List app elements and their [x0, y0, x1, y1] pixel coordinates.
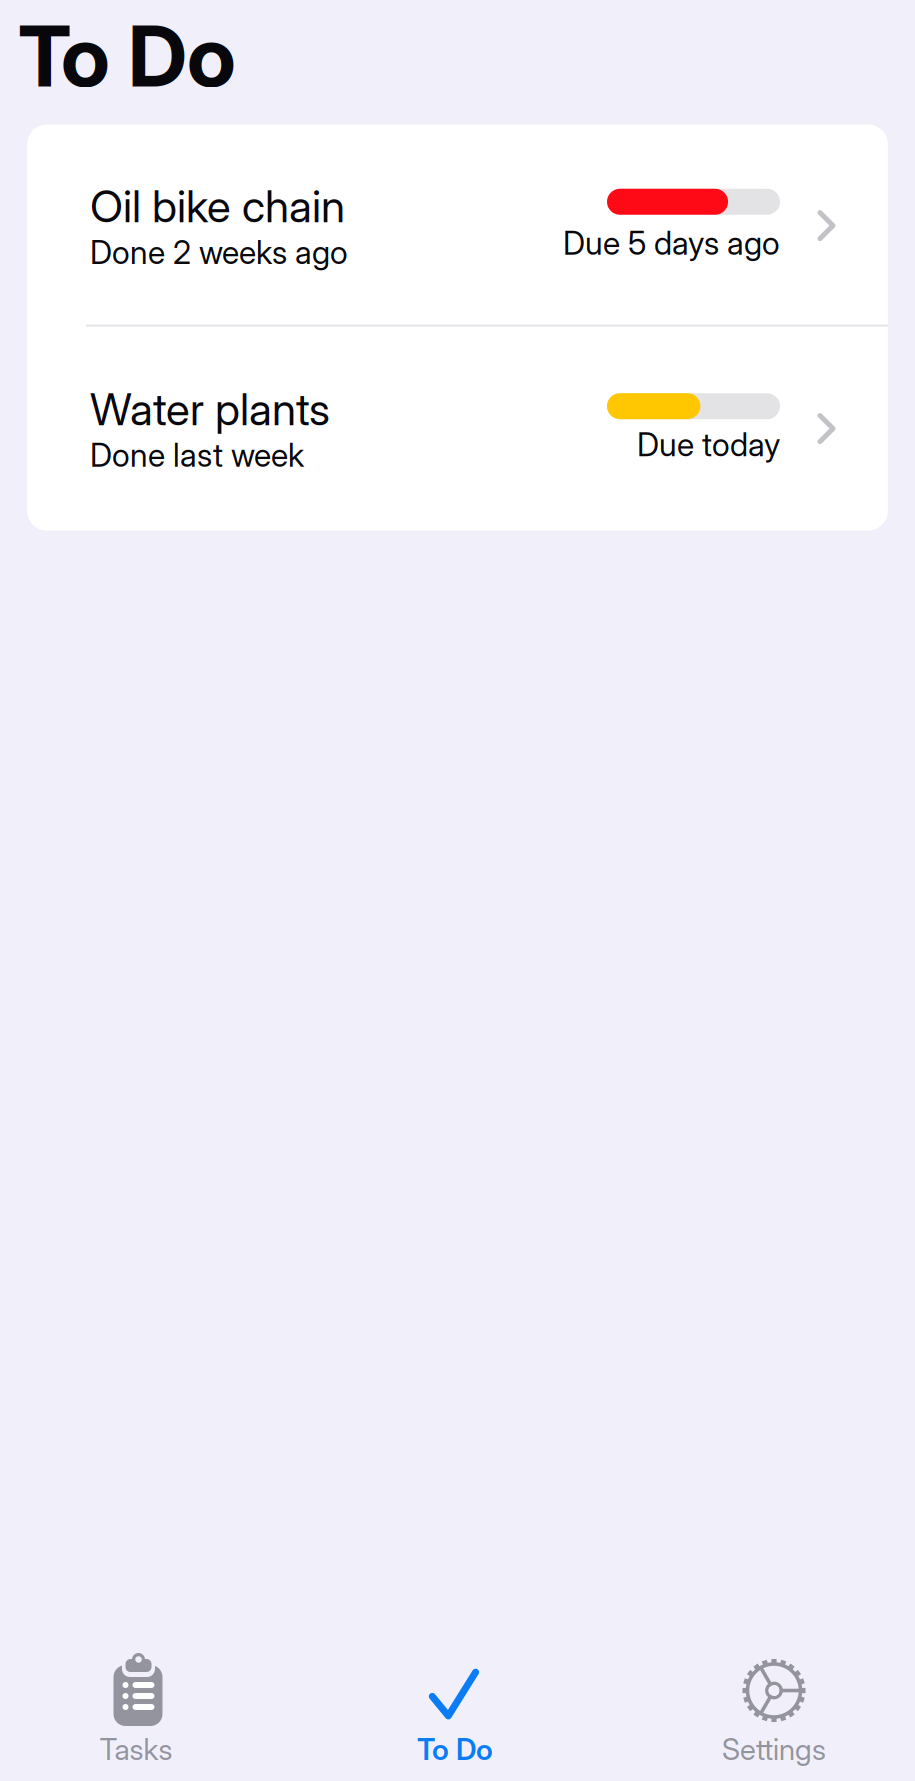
- button[interactable]: Water plants: [27, 327, 888, 531]
- staticText: Done 2 weeks ago: [90, 233, 348, 272]
- staticText: Water plants: [90, 383, 330, 436]
- staticText: Due 5 days ago: [563, 224, 780, 262]
- staticText: Tasks: [99, 1731, 172, 1767]
- staticText: Oil bike chain: [90, 180, 345, 233]
- button[interactable]: Oil bike chain: [27, 125, 888, 325]
- staticText: Done last week: [90, 436, 304, 474]
- button[interactable]: Settings: [674, 1645, 874, 1767]
- staticText: To Do: [18, 5, 236, 107]
- staticText: Settings: [722, 1731, 826, 1767]
- staticText: To Do: [417, 1731, 493, 1767]
- staticText: Due today: [637, 425, 780, 464]
- button[interactable]: To Do: [355, 1645, 555, 1767]
- button[interactable]: Tasks: [36, 1645, 236, 1767]
